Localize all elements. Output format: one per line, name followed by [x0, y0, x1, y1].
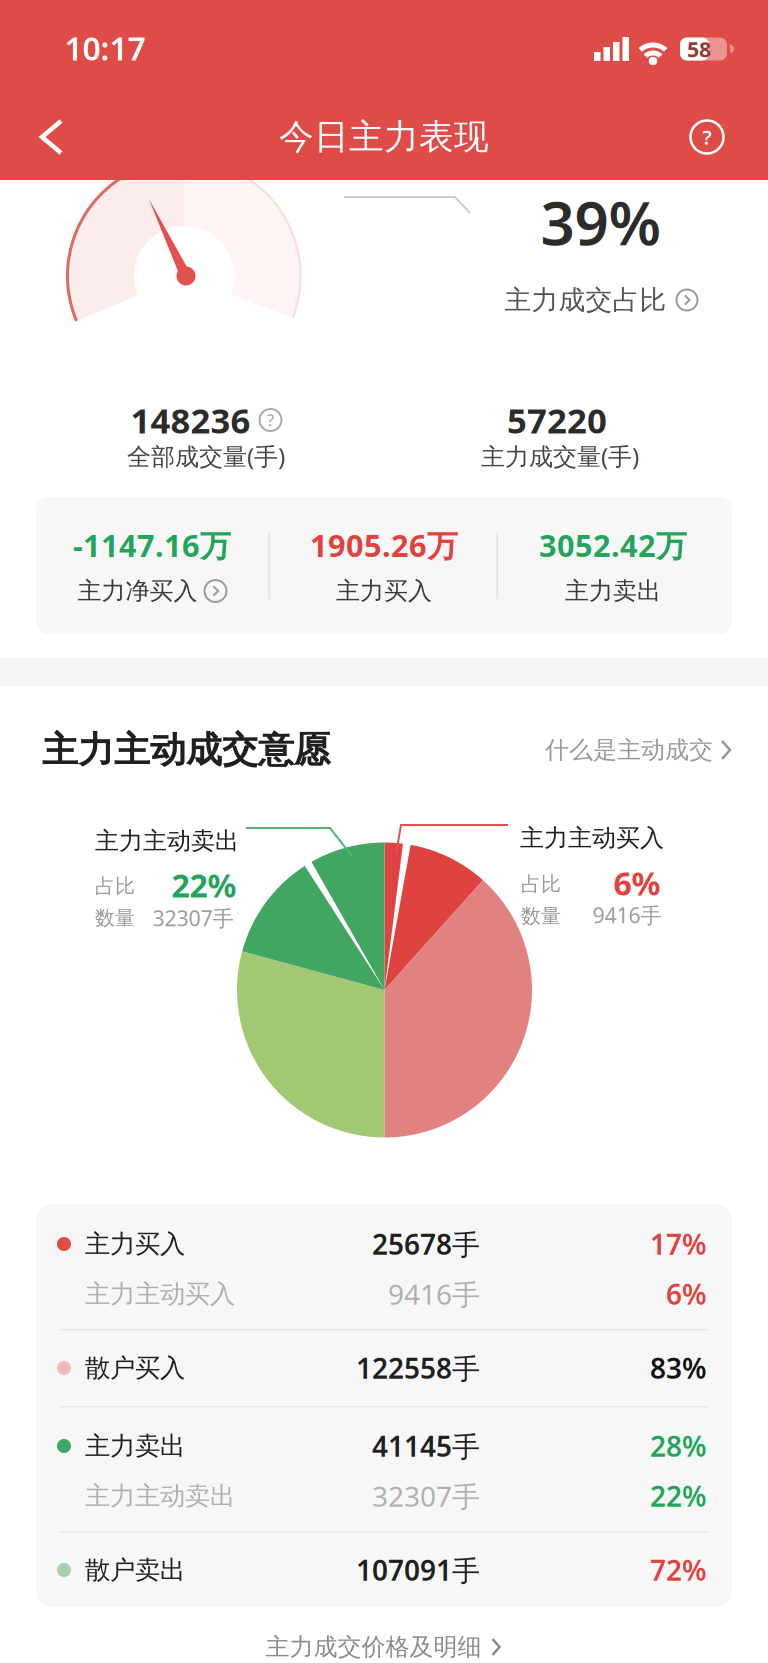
staticText: 32307手	[372, 1477, 480, 1515]
button[interactable]: 主力成交占比	[504, 284, 697, 316]
staticText: 什么是主动成交	[545, 735, 713, 765]
staticText: 83%	[650, 1349, 707, 1387]
staticText: 32307手	[152, 904, 233, 932]
staticText: 主力主动买入	[85, 1278, 235, 1309]
staticText: 22%	[171, 864, 236, 906]
staticText: 主力成交占比	[504, 284, 666, 316]
staticText: 1905.26万	[310, 525, 458, 565]
staticText: 9416手	[592, 901, 661, 929]
staticText: 主力成交量(手)	[481, 440, 639, 472]
staticText: 占比	[95, 874, 135, 898]
staticText: ?	[267, 409, 274, 431]
staticText: 6%	[613, 862, 660, 904]
staticText: 全部成交量(手)	[127, 440, 285, 472]
button[interactable]: Help	[685, 115, 729, 159]
staticText: 主力主动卖出	[85, 1480, 235, 1511]
staticText: 22%	[650, 1477, 707, 1515]
staticText: 122558手	[356, 1349, 480, 1387]
staticText: 107091手	[356, 1551, 480, 1589]
staticText: 3052.42万	[539, 525, 687, 565]
button[interactable]: 主力净买入	[77, 576, 226, 606]
staticText: 主力主动买入	[520, 823, 664, 853]
staticText: 数量	[521, 904, 561, 928]
staticText: 28%	[650, 1427, 707, 1465]
staticText: 72%	[650, 1551, 707, 1589]
staticText: 数量	[95, 906, 135, 930]
button[interactable]: 148236	[130, 397, 281, 443]
staticText: 主力成交价格及明细	[265, 1632, 481, 1662]
staticText: 17%	[650, 1225, 707, 1263]
button[interactable]: 主力成交价格及明细	[265, 1632, 502, 1662]
staticText: 主力买入	[85, 1228, 185, 1259]
staticText: 主力卖出	[85, 1430, 185, 1461]
staticText: 41145手	[372, 1427, 480, 1465]
staticText: 主力主动卖出	[95, 826, 239, 856]
staticText: 主力净买入	[77, 576, 197, 606]
staticText: 6%	[666, 1275, 707, 1313]
staticText: 散户卖出	[85, 1554, 185, 1585]
staticText: 占比	[521, 872, 561, 896]
staticText: 主力买入	[336, 576, 432, 606]
staticText: 9416手	[388, 1275, 480, 1313]
staticText: 58	[687, 35, 711, 63]
staticText: 主力卖出	[565, 576, 661, 606]
button[interactable]: 什么是主动成交	[545, 735, 733, 765]
staticText: 25678手	[372, 1225, 480, 1263]
staticText: ?	[702, 124, 711, 150]
staticText: 39%	[540, 182, 661, 262]
staticText: 散户买入	[85, 1352, 185, 1383]
staticText: 今日主力表现	[279, 116, 489, 158]
staticText: 57220	[507, 397, 607, 443]
staticText: 10:17	[64, 27, 145, 69]
staticText: 主力主动成交意愿	[42, 728, 330, 772]
button[interactable]: Back	[23, 117, 83, 157]
staticText: 148236	[130, 397, 250, 443]
staticText: -1147.16万	[73, 525, 231, 565]
